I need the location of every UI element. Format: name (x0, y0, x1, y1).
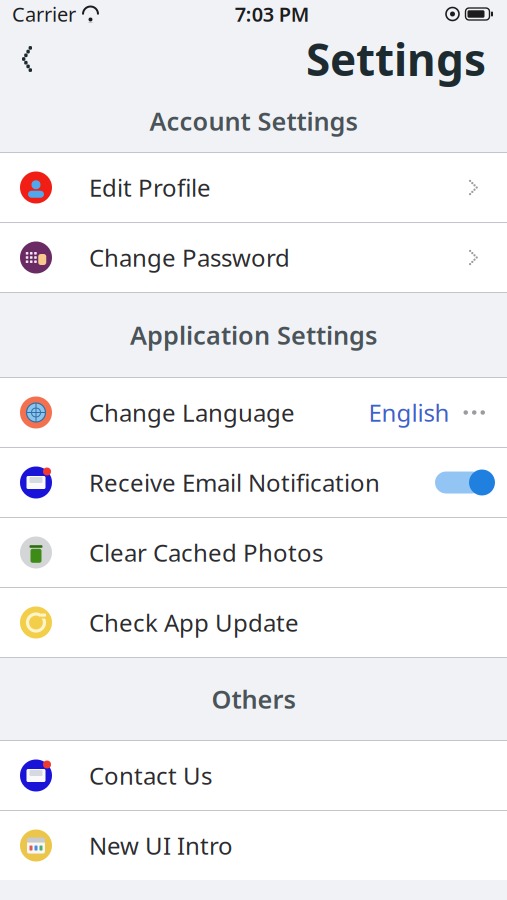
button[interactable]: Clear Cached Photos (0, 518, 507, 587)
staticText: Edit Profile (89, 172, 211, 203)
button[interactable]: Change Language (0, 378, 507, 447)
button[interactable]: Edit Profile (0, 153, 507, 222)
staticText: Contact Us (89, 760, 212, 791)
staticText: Check App Update (89, 607, 299, 638)
staticText: Carrier (12, 1, 76, 27)
staticText: Settings (306, 30, 486, 88)
button[interactable]: Back (0, 31, 56, 87)
button[interactable]: Receive Email Notification (0, 448, 507, 517)
staticText: 7:03 PM (235, 1, 310, 27)
button[interactable]: Change Password (0, 223, 507, 292)
button[interactable]: New UI Intro (0, 811, 507, 880)
staticText: English (368, 397, 449, 428)
staticText: Change Language (89, 397, 295, 428)
button[interactable]: Contact Us (0, 741, 507, 810)
staticText: Change Password (89, 242, 290, 273)
staticText: Receive Email Notification (89, 467, 380, 498)
staticText: Others (211, 682, 295, 716)
button[interactable]: Check App Update (0, 588, 507, 657)
staticText: Application Settings (130, 318, 377, 352)
staticText: Account Settings (149, 104, 357, 138)
staticText: Clear Cached Photos (89, 537, 323, 568)
staticText: New UI Intro (89, 830, 233, 861)
